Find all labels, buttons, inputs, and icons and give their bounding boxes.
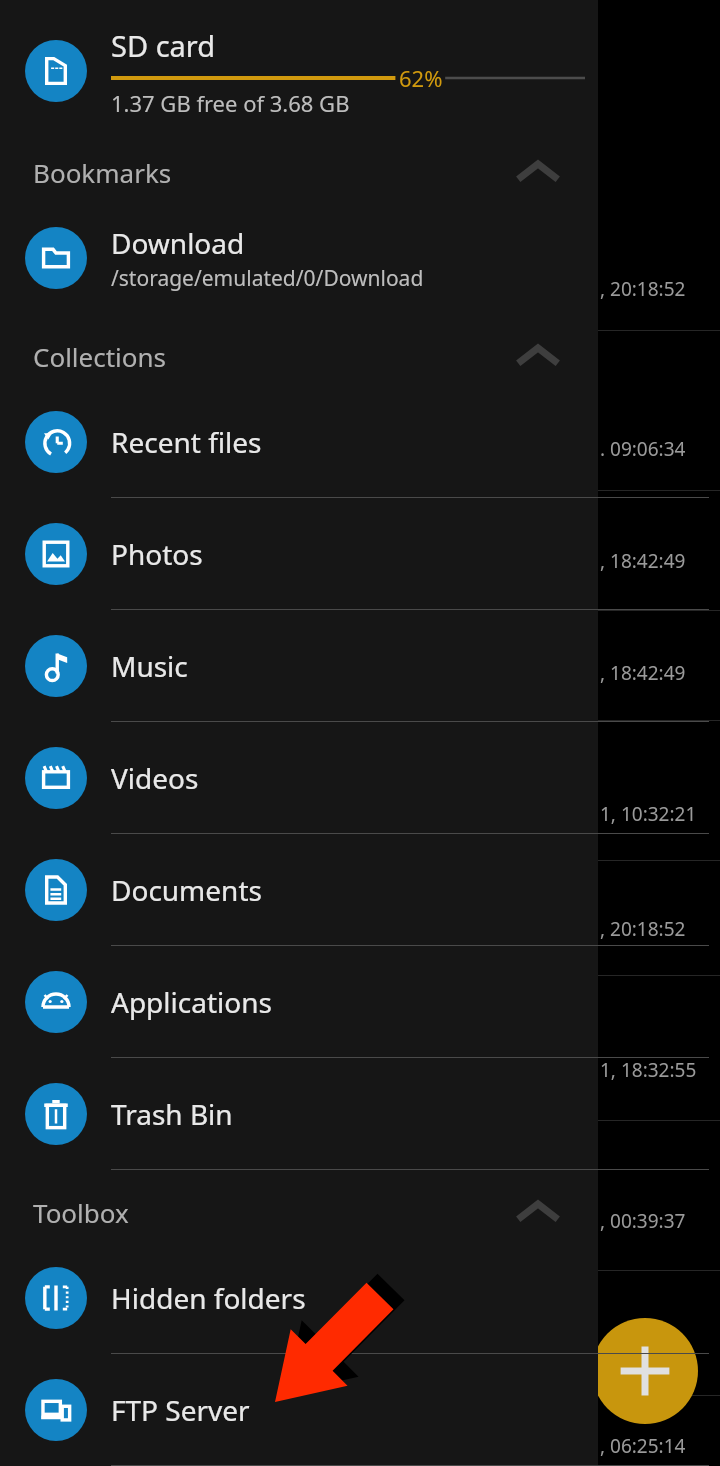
button[interactable]: Hidden folders	[0, 1242, 598, 1354]
staticText: Hidden folders	[111, 1279, 306, 1317]
staticText: Download	[111, 224, 245, 262]
staticText: 1, 10:32:21	[600, 801, 697, 827]
staticText: Photos	[111, 535, 203, 573]
button[interactable]: Toolbox	[0, 1182, 598, 1242]
staticText: 1, 18:32:55	[600, 1057, 697, 1083]
staticText: . 09:06:34	[600, 436, 686, 462]
button[interactable]: Add	[592, 1318, 698, 1424]
staticText: 62%	[399, 63, 443, 93]
button[interactable]: Download	[0, 202, 598, 314]
button[interactable]: Bookmarks	[0, 142, 598, 202]
staticText: , 18:42:49	[600, 548, 686, 574]
staticText: Documents	[111, 871, 262, 909]
staticText: Collections	[33, 339, 167, 374]
staticText: Music	[111, 647, 188, 685]
button[interactable]: SD card	[0, 20, 598, 120]
staticText: Trash Bin	[111, 1095, 233, 1133]
button[interactable]: Recent files	[0, 386, 598, 498]
staticText: Recent files	[111, 423, 262, 461]
staticText: Applications	[111, 983, 272, 1021]
button[interactable]: Trash Bin	[0, 1058, 598, 1170]
button[interactable]: Videos	[0, 722, 598, 834]
button[interactable]: Applications	[0, 946, 598, 1058]
button[interactable]: Music	[0, 610, 598, 722]
staticText: FTP Server	[111, 1391, 250, 1429]
staticText: , 20:18:52	[600, 916, 686, 942]
staticText: , 00:39:37	[600, 1208, 686, 1234]
staticText: , 06:25:14	[600, 1433, 686, 1459]
staticText: SD card	[111, 26, 216, 65]
staticText: 1.37 GB free of 3.68 GB	[111, 88, 350, 118]
staticText: , 18:42:49	[600, 660, 686, 686]
button[interactable]: Documents	[0, 834, 598, 946]
button[interactable]: FTP Server	[0, 1354, 598, 1466]
staticText: , 20:18:52	[600, 276, 686, 302]
staticText: /storage/emulated/0/Download	[111, 264, 424, 293]
staticText: Bookmarks	[33, 155, 172, 190]
staticText: Toolbox	[33, 1195, 129, 1230]
button[interactable]: Photos	[0, 498, 598, 610]
staticText: Videos	[111, 759, 199, 797]
button[interactable]: Collections	[0, 326, 598, 386]
